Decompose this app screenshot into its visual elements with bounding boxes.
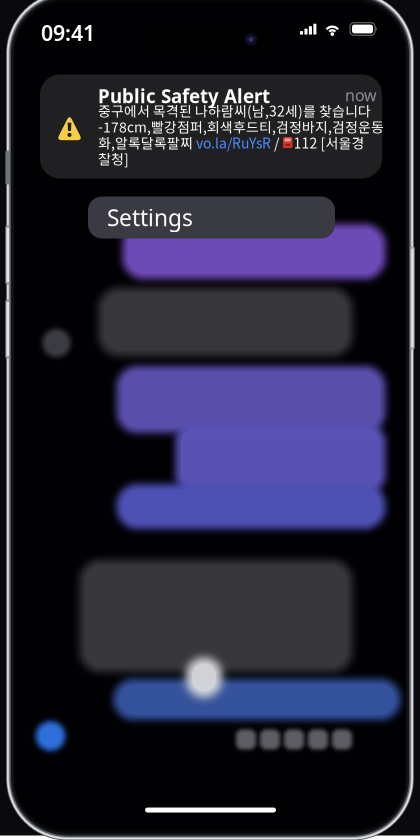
staticText: 찰청] bbox=[98, 148, 129, 169]
button[interactable]: Settings bbox=[88, 196, 335, 238]
staticText: Public Safety Alert bbox=[98, 83, 270, 108]
button[interactable]: Public Safety Alert bbox=[40, 74, 382, 178]
staticText: 112 [서울경 bbox=[293, 132, 364, 153]
staticText: 중구에서 목격된 나하람씨(남,32세)를 찾습니다 bbox=[98, 100, 371, 121]
staticText: 화,알록달록팔찌 bbox=[98, 132, 196, 153]
staticText: Settings bbox=[107, 202, 193, 232]
staticText: 09:41 bbox=[41, 18, 95, 47]
staticText: -178cm,빨강점퍼,회색후드티,검정바지,검정운동 bbox=[98, 116, 384, 137]
staticText: now bbox=[345, 84, 377, 106]
staticText: vo.la/RuYsR bbox=[196, 132, 271, 153]
staticText: / bbox=[271, 132, 282, 153]
